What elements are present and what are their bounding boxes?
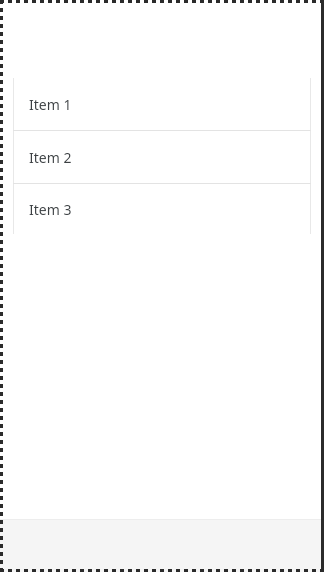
button[interactable]: Item 2: [13, 131, 311, 183]
button[interactable]: Item 1: [13, 78, 311, 130]
staticText: Item 2: [29, 148, 72, 167]
staticText: Item 1: [29, 95, 72, 114]
button[interactable]: Item 3: [13, 184, 311, 234]
staticText: Item 3: [29, 200, 72, 219]
